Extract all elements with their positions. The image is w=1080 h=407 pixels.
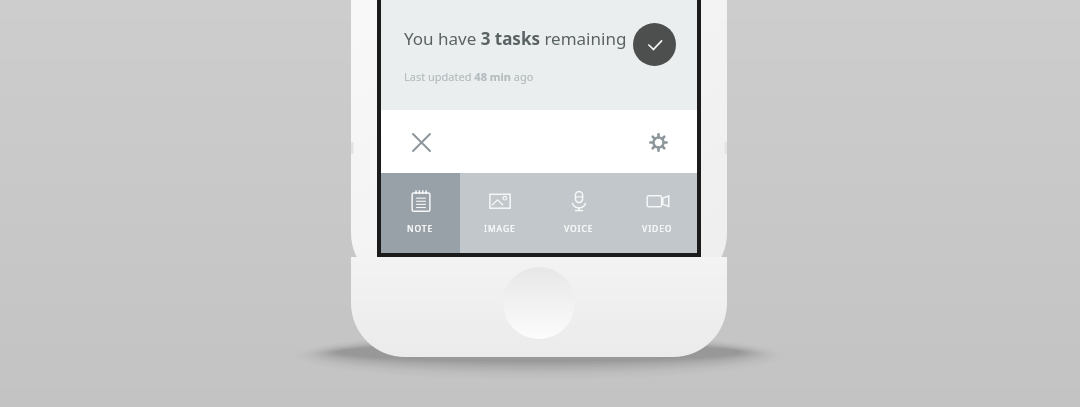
- staticText: IMAGE: [484, 223, 516, 235]
- button[interactable]: Mark all done: [633, 23, 676, 66]
- button[interactable]: Settings: [636, 120, 680, 164]
- staticText: NOTE: [407, 223, 434, 235]
- staticText: VIDEO: [642, 223, 673, 235]
- button[interactable]: IMAGE: [460, 173, 539, 253]
- button[interactable]: Close: [399, 120, 443, 164]
- button[interactable]: Home: [503, 267, 575, 339]
- staticText: VOICE: [564, 223, 594, 235]
- button[interactable]: VOICE: [539, 173, 618, 253]
- button[interactable]: VIDEO: [618, 173, 697, 253]
- button[interactable]: NOTE: [381, 173, 460, 253]
- staticText: Last updated 48 min ago: [404, 69, 534, 84]
- staticText: You have 3 tasks remaining: [404, 27, 627, 50]
